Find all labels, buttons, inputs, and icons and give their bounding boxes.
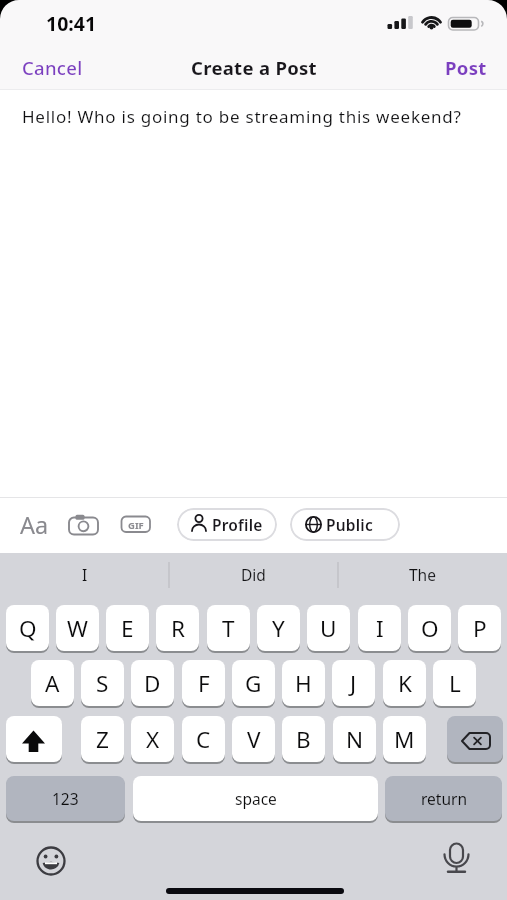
staticText: space [235, 788, 277, 809]
staticText: GIF [128, 519, 144, 532]
staticText: Profile [212, 514, 263, 535]
staticText: U [320, 613, 337, 644]
staticText: M [394, 724, 415, 755]
staticText: Z [96, 724, 109, 755]
staticText: I [82, 564, 88, 585]
staticText: 10:41 [46, 10, 97, 37]
staticText: Hello! Who is going to be streaming this… [22, 105, 462, 128]
button[interactable] [115, 508, 157, 541]
button[interactable]: Cancel [14, 50, 104, 84]
button[interactable]: D [131, 660, 174, 706]
button[interactable]: E [106, 605, 149, 651]
staticText: return [421, 788, 467, 809]
button[interactable]: V [232, 716, 275, 762]
button[interactable]: W [56, 605, 99, 651]
button[interactable]: 123 [6, 776, 125, 821]
button[interactable]: R [156, 605, 199, 651]
staticText: P [473, 613, 487, 644]
button[interactable]: F [182, 660, 225, 706]
staticText: T [222, 613, 235, 644]
button[interactable]: A [31, 660, 74, 706]
staticText: X [146, 724, 160, 755]
staticText: K [398, 668, 412, 699]
staticText: V [247, 724, 261, 755]
button[interactable] [437, 838, 477, 878]
button[interactable]: Z [81, 716, 124, 762]
staticText: Q [19, 613, 37, 644]
staticText: Cancel [22, 55, 83, 80]
staticText: Aa [20, 509, 49, 541]
button[interactable]: space [133, 776, 378, 821]
staticText: R [171, 613, 185, 644]
staticText: G [245, 668, 262, 699]
staticText: Did [241, 564, 266, 585]
button[interactable]: H [282, 660, 325, 706]
button[interactable]: return [385, 776, 502, 821]
button[interactable]: T [207, 605, 250, 651]
button[interactable] [6, 716, 62, 762]
button[interactable]: Post [415, 50, 495, 84]
button[interactable]: L [433, 660, 476, 706]
button[interactable]: U [307, 605, 350, 651]
button[interactable]: N [333, 716, 376, 762]
button[interactable]: I [30, 557, 140, 591]
staticText: E [121, 613, 134, 644]
button[interactable] [16, 505, 56, 543]
button[interactable]: P [458, 605, 501, 651]
staticText: J [350, 668, 357, 699]
button[interactable]: Public [290, 508, 400, 541]
staticText: The [409, 564, 436, 585]
button[interactable]: Y [257, 605, 300, 651]
button[interactable]: O [408, 605, 451, 651]
staticText: F [198, 668, 210, 699]
staticText: Y [272, 613, 285, 644]
button[interactable]: Profile [177, 508, 277, 541]
staticText: B [296, 724, 311, 755]
button[interactable]: C [182, 716, 225, 762]
button[interactable]: B [282, 716, 325, 762]
staticText: I [376, 613, 384, 644]
staticText: N [346, 724, 364, 755]
staticText: Create a Post [191, 55, 317, 80]
staticText: H [295, 668, 312, 699]
button[interactable]: I [358, 605, 401, 651]
staticText: D [144, 668, 161, 699]
staticText: Post [445, 55, 487, 80]
button[interactable]: S [81, 660, 124, 706]
button[interactable]: K [383, 660, 426, 706]
staticText: 123 [52, 788, 79, 809]
staticText: S [96, 668, 109, 699]
button[interactable]: G [232, 660, 275, 706]
button[interactable] [447, 716, 503, 762]
staticText: A [45, 668, 60, 699]
staticText: C [196, 724, 211, 755]
staticText: Public [326, 514, 373, 535]
button[interactable]: Q [6, 605, 49, 651]
staticText: O [421, 613, 439, 644]
button[interactable]: The [367, 557, 477, 591]
button[interactable] [31, 841, 71, 881]
button[interactable]: Did [198, 557, 308, 591]
button[interactable]: M [383, 716, 426, 762]
button[interactable] [63, 508, 103, 541]
button[interactable]: X [131, 716, 174, 762]
button[interactable]: J [332, 660, 375, 706]
staticText: L [449, 668, 461, 699]
staticText: W [67, 613, 88, 644]
